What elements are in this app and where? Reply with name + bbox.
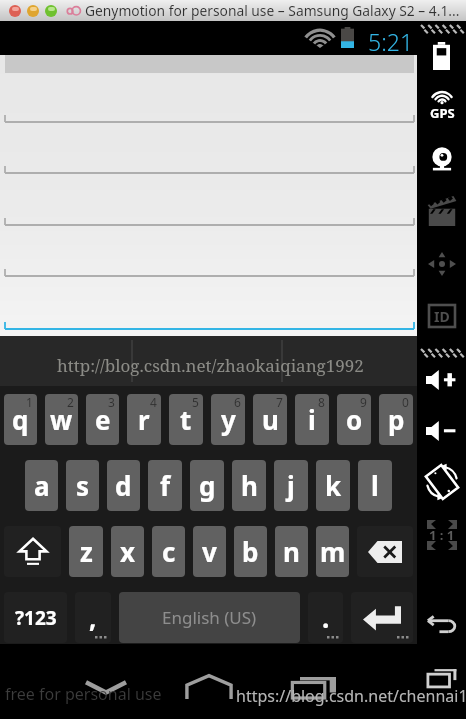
staticText: d bbox=[115, 468, 132, 503]
button[interactable]: o bbox=[337, 394, 371, 445]
button[interactable]: k bbox=[316, 460, 350, 511]
button[interactable]: u bbox=[253, 394, 287, 445]
button[interactable]: d bbox=[107, 460, 140, 511]
staticText: s bbox=[76, 468, 90, 503]
button[interactable]: Rotate bbox=[417, 459, 466, 505]
button[interactable]: z bbox=[69, 526, 103, 577]
staticText: i bbox=[308, 402, 316, 437]
button[interactable]: j bbox=[274, 460, 308, 511]
staticText: 0 bbox=[402, 394, 409, 410]
button[interactable]: p bbox=[379, 394, 413, 445]
button[interactable]: l bbox=[358, 460, 392, 511]
button[interactable]: Recent apps bbox=[278, 661, 348, 713]
button[interactable]: Shift bbox=[4, 526, 61, 577]
staticText: 1 : 1 bbox=[429, 526, 455, 544]
staticText: Genymotion for personal use – Samsung Ga… bbox=[85, 1, 460, 20]
button[interactable]: x bbox=[111, 526, 144, 577]
staticText: l bbox=[371, 468, 379, 503]
staticText: 6 bbox=[234, 394, 241, 410]
staticText: u bbox=[262, 402, 279, 437]
staticText: x bbox=[120, 534, 136, 569]
staticText: c bbox=[162, 534, 176, 569]
staticText: https://blog.csdn.net/chennai1101 bbox=[236, 685, 466, 707]
staticText: 5:21 bbox=[368, 26, 414, 57]
staticText: GPS bbox=[430, 104, 455, 122]
staticText: r bbox=[138, 402, 150, 437]
staticText: 2 bbox=[67, 394, 74, 410]
staticText: n bbox=[283, 534, 300, 569]
button[interactable]: Home bbox=[174, 661, 244, 713]
button[interactable]: e bbox=[86, 394, 119, 445]
button[interactable]: Comma bbox=[75, 592, 111, 643]
staticText: 1 bbox=[26, 394, 33, 410]
staticText: b bbox=[242, 534, 259, 569]
button[interactable]: Identifiers bbox=[417, 293, 466, 339]
staticText: , bbox=[89, 600, 97, 635]
button[interactable]: f bbox=[148, 460, 182, 511]
other: Wi-Fi bbox=[307, 29, 333, 48]
button[interactable]: Scale 1:1 bbox=[417, 512, 466, 558]
staticText: ID bbox=[434, 307, 450, 326]
button[interactable]: Back bbox=[71, 661, 141, 713]
button[interactable]: s bbox=[66, 460, 99, 511]
staticText: v bbox=[202, 534, 217, 569]
button[interactable]: t bbox=[169, 394, 203, 445]
button[interactable]: Battery bbox=[417, 33, 466, 79]
button[interactable]: b bbox=[234, 526, 267, 577]
staticText: h bbox=[241, 468, 258, 503]
button[interactable]: Volume up bbox=[417, 357, 466, 403]
staticText: English (US) bbox=[162, 606, 257, 629]
staticText: w bbox=[50, 402, 73, 437]
staticText: e bbox=[95, 402, 111, 437]
button[interactable]: r bbox=[127, 394, 161, 445]
staticText: q bbox=[12, 402, 29, 437]
staticText: free for personal use bbox=[5, 683, 162, 705]
staticText: http://blog.csdn.net/zhaokaiqiang1992 bbox=[57, 354, 364, 377]
staticText: j bbox=[287, 468, 295, 503]
button[interactable]: Enter bbox=[351, 592, 413, 643]
button[interactable]: n bbox=[275, 526, 308, 577]
staticText: 8 bbox=[318, 394, 325, 410]
staticText: y bbox=[221, 402, 236, 437]
button[interactable]: Back bbox=[417, 603, 466, 649]
staticText: m bbox=[320, 534, 346, 569]
button[interactable]: Symbols bbox=[4, 592, 67, 643]
button[interactable]: i bbox=[295, 394, 329, 445]
button[interactable]: m bbox=[316, 526, 349, 577]
staticText: ?123 bbox=[15, 605, 57, 631]
staticText: t bbox=[180, 402, 192, 437]
button[interactable]: Camera bbox=[417, 136, 466, 182]
button[interactable]: Recent apps bbox=[417, 656, 466, 702]
staticText: z bbox=[80, 534, 93, 569]
staticText: a bbox=[34, 468, 50, 503]
button[interactable]: w bbox=[45, 394, 78, 445]
staticText: f bbox=[160, 468, 171, 503]
button[interactable]: Period bbox=[308, 592, 343, 643]
staticText: k bbox=[325, 468, 342, 503]
staticText: 3 bbox=[108, 394, 115, 410]
button[interactable]: a bbox=[25, 460, 58, 511]
staticText: p bbox=[388, 402, 405, 437]
button[interactable]: c bbox=[152, 526, 185, 577]
other: Battery bbox=[341, 27, 354, 48]
staticText: o bbox=[346, 402, 363, 437]
button[interactable]: Backspace bbox=[357, 526, 413, 577]
button[interactable]: GPS bbox=[417, 83, 466, 129]
staticText: 9 bbox=[360, 394, 367, 410]
button[interactable]: v bbox=[193, 526, 226, 577]
staticText: 7 bbox=[276, 394, 283, 410]
button[interactable]: y bbox=[211, 394, 245, 445]
staticText: 5 bbox=[192, 394, 199, 410]
button[interactable]: D-pad bbox=[417, 241, 466, 287]
button[interactable]: g bbox=[190, 460, 224, 511]
staticText: g bbox=[199, 468, 216, 503]
staticText: . bbox=[322, 600, 330, 635]
button[interactable]: English (US) bbox=[119, 592, 300, 643]
button[interactable]: Volume down bbox=[417, 408, 466, 454]
staticText: 4 bbox=[150, 394, 157, 410]
button[interactable]: Video recorder bbox=[417, 187, 466, 233]
button[interactable]: h bbox=[232, 460, 266, 511]
button[interactable]: q bbox=[4, 394, 37, 445]
